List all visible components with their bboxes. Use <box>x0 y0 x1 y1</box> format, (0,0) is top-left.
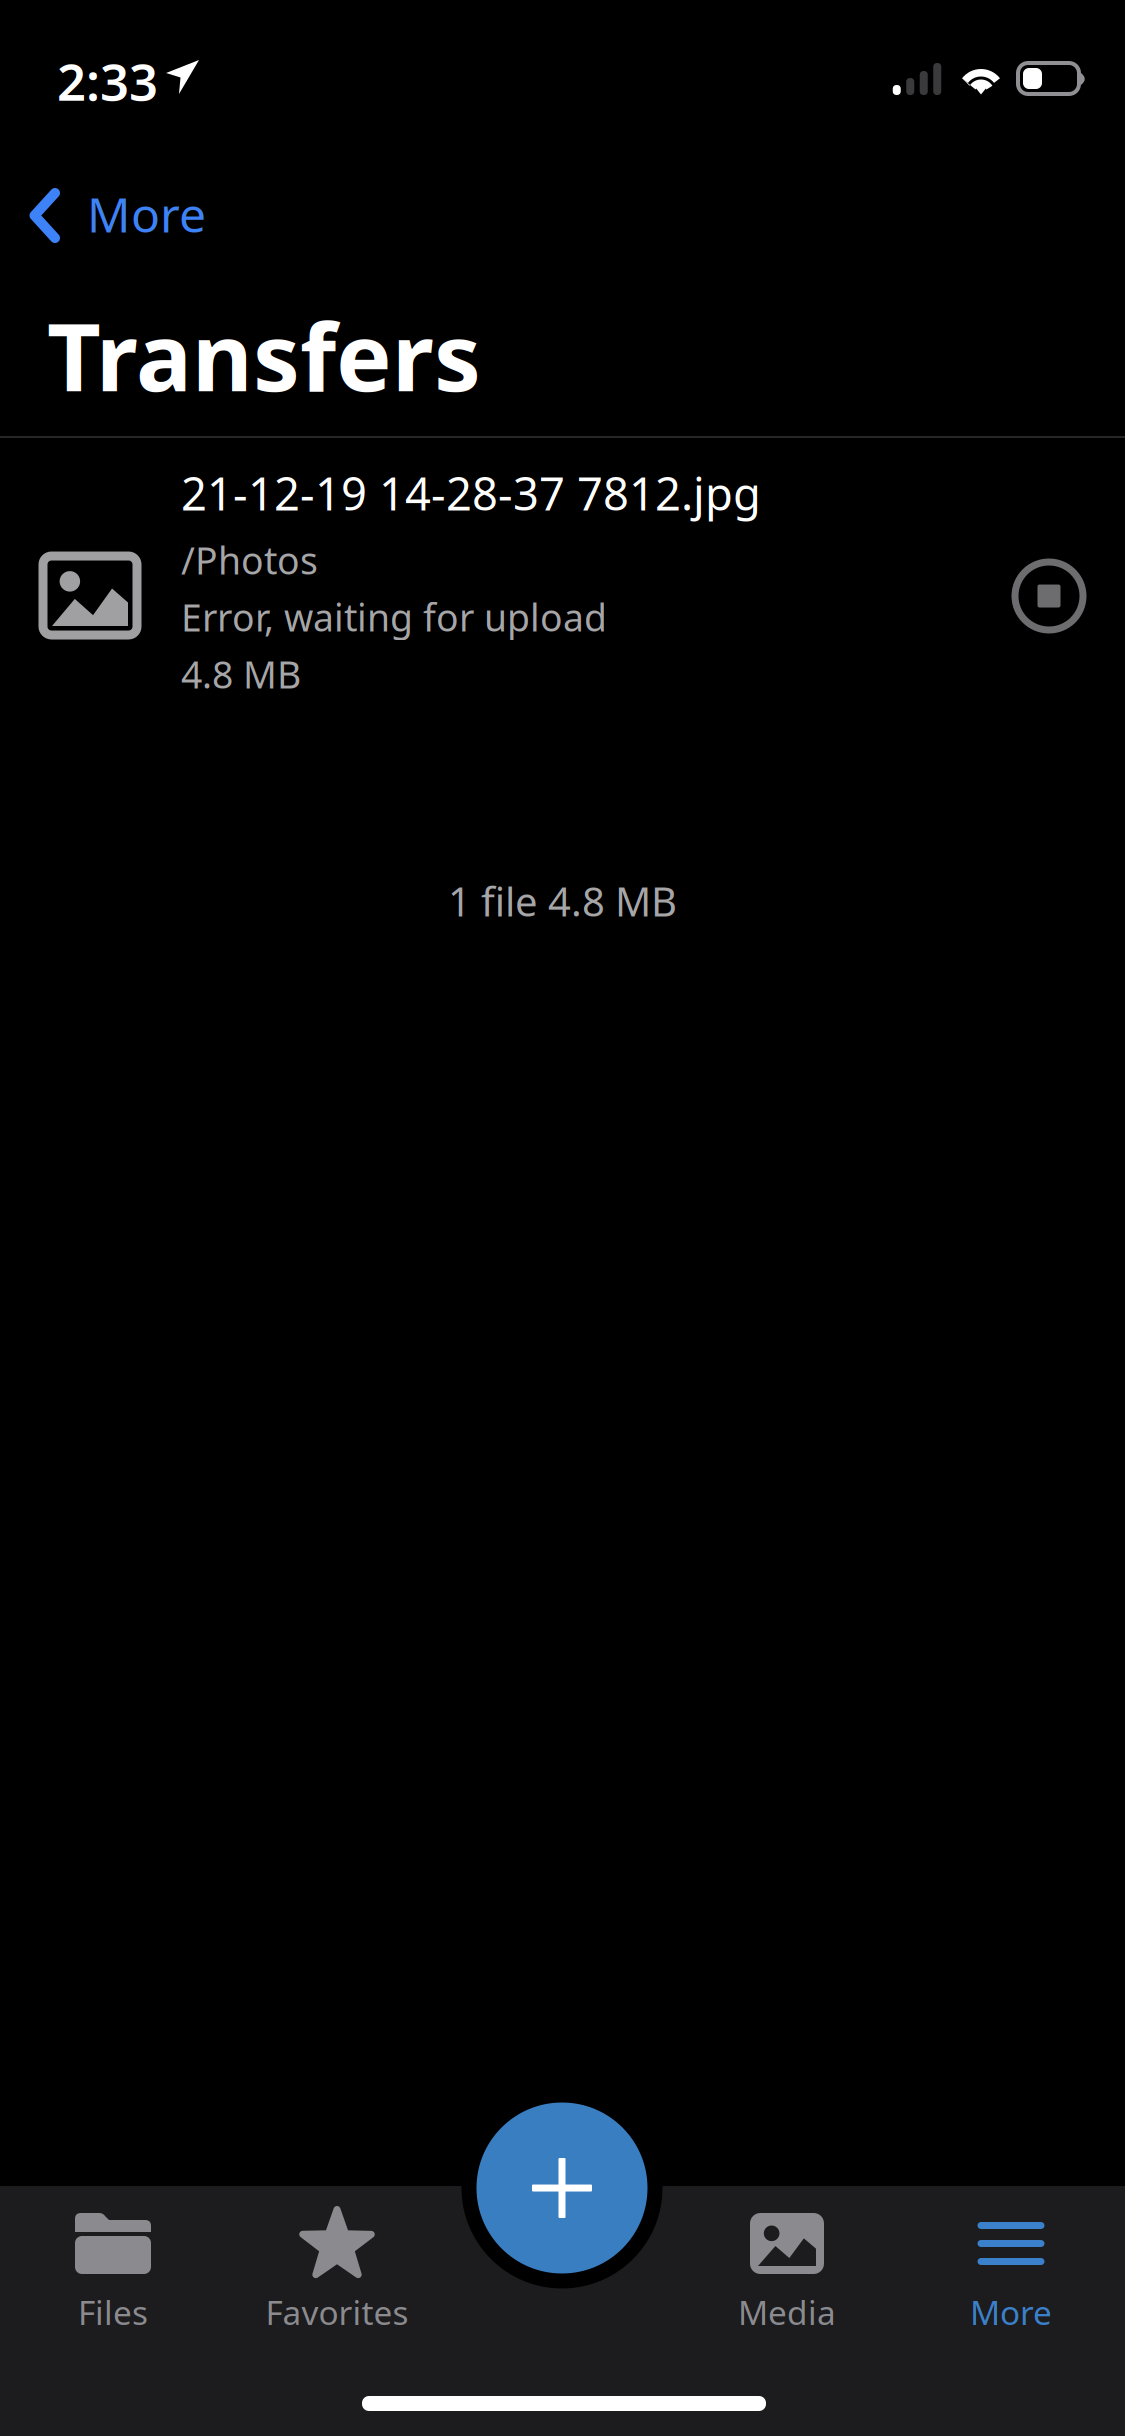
staticText: Favorites <box>265 2290 408 2334</box>
staticText: 4.8 MB <box>181 649 301 699</box>
button[interactable]: Files <box>1 2194 225 2344</box>
staticText: Media <box>738 2290 836 2334</box>
staticText: More <box>87 182 206 246</box>
staticText: 21-12-19 14-28-37 7812.jpg <box>181 463 761 523</box>
button[interactable]: 21-12-19 14-28-37 7812.jpg <box>0 442 1125 712</box>
staticText: /Photos <box>181 535 318 585</box>
button[interactable]: Add transfer <box>457 2083 667 2293</box>
staticText: 1 file 4.8 MB <box>448 874 677 927</box>
staticText: Transfers <box>47 293 481 417</box>
staticText: Error, waiting for upload <box>181 592 607 642</box>
button[interactable]: Media <box>675 2194 899 2344</box>
staticText: Files <box>78 2290 148 2334</box>
button[interactable]: Favorites <box>225 2194 449 2344</box>
button[interactable]: Stop transfer <box>994 541 1104 651</box>
button[interactable]: More <box>899 2194 1123 2344</box>
button[interactable]: More <box>0 160 250 260</box>
staticText: 2:33 <box>57 47 158 115</box>
staticText: More <box>970 2290 1052 2334</box>
